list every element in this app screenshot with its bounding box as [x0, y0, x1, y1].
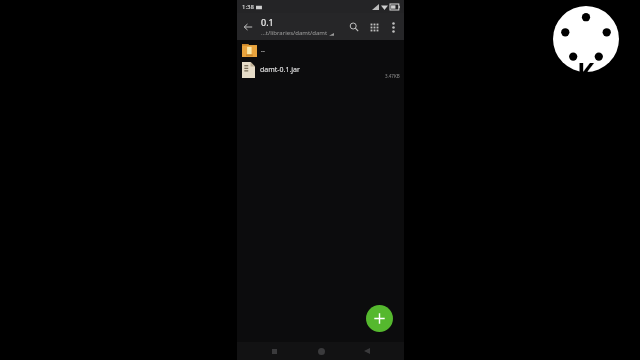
staticText: damt-0.1.jar: [260, 65, 300, 75]
button[interactable]: Recents: [265, 342, 283, 360]
staticText: 3.47KB: [385, 73, 400, 79]
staticText: ...t/libraries/damt/damt: [261, 29, 328, 37]
button[interactable]: Home: [312, 342, 330, 360]
staticText: ..: [261, 45, 265, 55]
button[interactable]: damt-0.1.jar: [237, 60, 404, 80]
button[interactable]: Back: [358, 342, 376, 360]
button[interactable]: Add: [366, 305, 393, 332]
staticText: 1:38: [242, 3, 254, 11]
staticText: K: [577, 54, 595, 78]
button[interactable]: Search: [344, 17, 364, 37]
button[interactable]: ..: [237, 40, 404, 60]
button[interactable]: Back: [237, 16, 259, 38]
staticText: 0.1: [261, 16, 274, 28]
button[interactable]: More options: [384, 18, 402, 36]
button[interactable]: Grid view: [364, 17, 384, 37]
